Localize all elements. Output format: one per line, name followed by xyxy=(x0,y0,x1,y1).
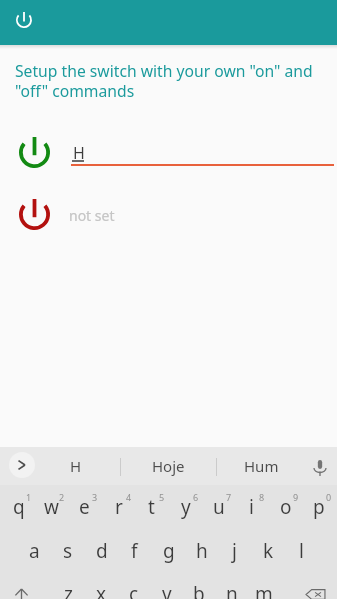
button[interactable]: Backspace xyxy=(294,572,337,599)
staticText: H xyxy=(73,142,85,164)
staticText: Setup the switch with your own "on" and … xyxy=(15,60,320,102)
button[interactable]: Shift xyxy=(0,572,43,599)
staticText: f xyxy=(131,538,138,564)
staticText: Hum xyxy=(244,456,279,476)
button[interactable]: p xyxy=(302,485,335,529)
staticText: u xyxy=(213,494,225,520)
button[interactable]: H xyxy=(0,130,337,176)
staticText: m xyxy=(255,581,273,599)
button[interactable]: s xyxy=(51,529,84,573)
staticText: p xyxy=(313,494,325,520)
staticText: l xyxy=(299,538,304,564)
staticText: b xyxy=(193,581,205,599)
button[interactable]: r xyxy=(102,485,135,529)
button[interactable]: v xyxy=(150,572,183,599)
staticText: j xyxy=(232,538,237,564)
button[interactable]: q xyxy=(2,485,35,529)
staticText: a xyxy=(29,538,40,564)
staticText: d xyxy=(96,538,108,564)
button[interactable]: k xyxy=(252,529,285,573)
button[interactable]: y xyxy=(169,485,202,529)
staticText: 5 xyxy=(159,491,165,503)
staticText: q xyxy=(13,494,25,520)
staticText: i xyxy=(249,494,254,520)
button[interactable]: j xyxy=(218,529,251,573)
button[interactable]: m xyxy=(247,572,280,599)
button[interactable]: g xyxy=(152,529,185,573)
staticText: h xyxy=(196,538,208,564)
button[interactable]: H xyxy=(29,447,122,485)
button[interactable]: Power xyxy=(9,5,39,35)
staticText: 6 xyxy=(193,491,199,503)
staticText: g xyxy=(163,538,175,564)
staticText: x xyxy=(96,581,107,599)
button[interactable]: i xyxy=(235,485,268,529)
staticText: z xyxy=(64,581,73,599)
button[interactable]: f xyxy=(118,529,151,573)
staticText: c xyxy=(129,581,139,599)
staticText: 8 xyxy=(259,491,265,503)
staticText: H xyxy=(70,456,82,476)
button[interactable]: b xyxy=(182,572,215,599)
staticText: 3 xyxy=(92,491,98,503)
staticText: s xyxy=(63,538,73,564)
staticText: w xyxy=(44,494,59,520)
staticText: n xyxy=(226,581,238,599)
staticText: v xyxy=(162,581,172,599)
staticText: 2 xyxy=(59,491,65,503)
button[interactable]: d xyxy=(85,529,118,573)
staticText: not set xyxy=(69,206,115,225)
button[interactable]: z xyxy=(52,572,85,599)
button[interactable]: l xyxy=(285,529,318,573)
button[interactable]: e xyxy=(68,485,101,529)
button[interactable]: Voice input xyxy=(303,447,337,488)
staticText: 0 xyxy=(326,491,332,503)
button[interactable]: Hoje xyxy=(122,447,215,485)
button[interactable]: n xyxy=(215,572,248,599)
staticText: t xyxy=(148,494,155,520)
staticText: 9 xyxy=(293,491,299,503)
staticText: Hoje xyxy=(152,456,185,476)
staticText: 7 xyxy=(226,491,232,503)
staticText: 1 xyxy=(26,491,32,503)
button[interactable]: u xyxy=(202,485,235,529)
button[interactable]: x xyxy=(85,572,118,599)
staticText: e xyxy=(79,494,90,520)
button[interactable]: c xyxy=(117,572,150,599)
button[interactable]: o xyxy=(269,485,302,529)
staticText: o xyxy=(280,494,292,520)
button[interactable]: Hum xyxy=(215,447,308,485)
staticText: 4 xyxy=(126,491,132,503)
staticText: k xyxy=(263,538,274,564)
button[interactable]: More suggestions xyxy=(9,452,35,478)
staticText: y xyxy=(181,494,191,520)
button[interactable]: h xyxy=(185,529,218,573)
button[interactable]: t xyxy=(135,485,168,529)
button[interactable]: a xyxy=(18,529,51,573)
button[interactable]: w xyxy=(35,485,68,529)
staticText: r xyxy=(115,494,123,520)
button[interactable]: not set xyxy=(0,192,337,238)
